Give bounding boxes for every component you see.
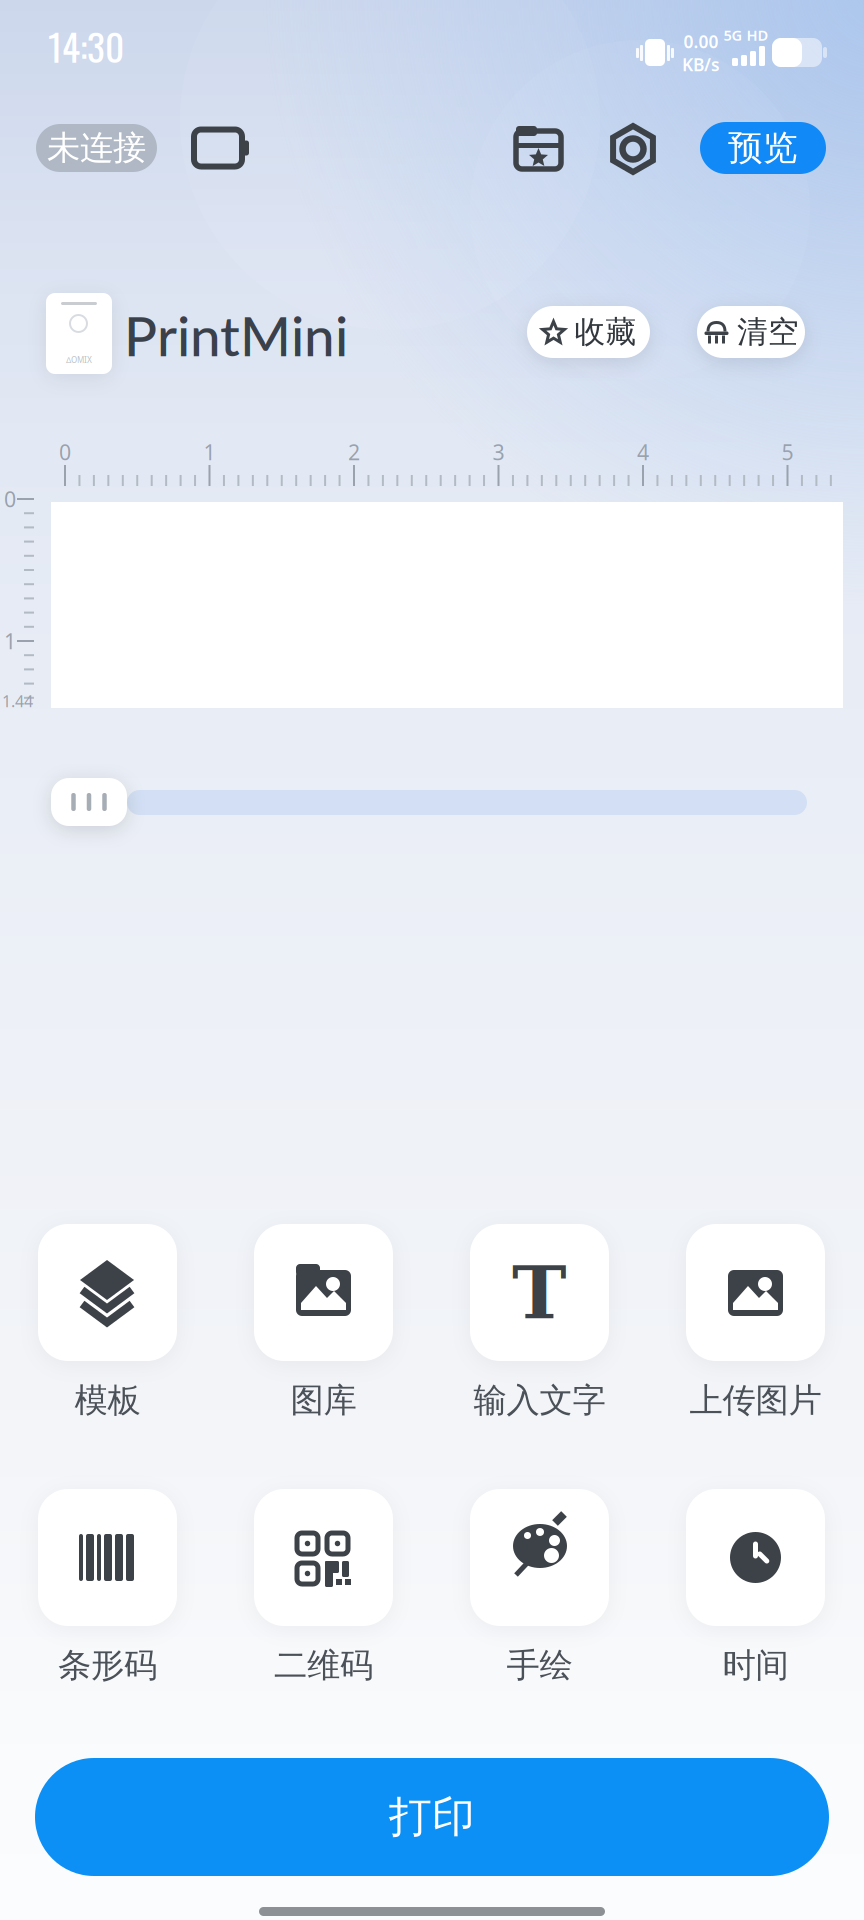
staticText: 条形码 — [58, 1645, 157, 1686]
button[interactable]: 打印 — [35, 1758, 829, 1876]
staticText: ∆OMIX — [66, 355, 92, 365]
button[interactable]: 手绘 — [444, 1489, 634, 1693]
button[interactable]: 上传图片 — [660, 1224, 850, 1428]
staticText: 0 — [4, 485, 16, 513]
button[interactable]: 图库 — [228, 1224, 418, 1428]
button[interactable]: 模板 — [12, 1224, 202, 1428]
staticText: T — [512, 1249, 567, 1336]
staticText: 4 — [637, 438, 649, 466]
button[interactable]: T — [444, 1224, 634, 1428]
staticText: 0.00 — [683, 30, 718, 53]
staticText: PrintMini — [124, 302, 348, 368]
button[interactable]: 时间 — [660, 1489, 850, 1693]
staticText: 清空 — [737, 313, 799, 351]
staticText: 图库 — [290, 1380, 356, 1421]
button[interactable]: 清空 — [697, 306, 805, 358]
button[interactable]: 收藏 — [527, 306, 650, 358]
staticText: 预览 — [728, 127, 798, 169]
button[interactable]: 未连接 — [36, 124, 157, 172]
staticText: 未连接 — [47, 127, 146, 168]
staticText: 时间 — [722, 1645, 788, 1686]
staticText: 打印 — [389, 1791, 475, 1843]
staticText: 0 — [59, 438, 71, 466]
staticText: KB/s — [682, 53, 720, 76]
staticText: 手绘 — [506, 1645, 572, 1686]
button[interactable] — [607, 123, 659, 175]
button[interactable] — [514, 124, 564, 172]
staticText: 上传图片 — [689, 1380, 821, 1421]
staticText: 1 — [4, 627, 16, 655]
staticText: 5 — [781, 438, 793, 466]
staticText: 5G HD — [723, 25, 768, 45]
staticText: 2 — [348, 438, 360, 466]
staticText: 1.44 — [2, 690, 33, 712]
staticText: 3 — [492, 438, 504, 466]
button[interactable] — [193, 126, 249, 170]
button[interactable] — [51, 778, 127, 826]
staticText: 14:30 — [48, 18, 124, 74]
staticText: 收藏 — [574, 313, 636, 351]
staticText: 二维码 — [274, 1645, 373, 1686]
staticText: 输入文字 — [473, 1380, 605, 1421]
button[interactable]: 预览 — [700, 122, 826, 174]
button[interactable]: 条形码 — [12, 1489, 202, 1693]
button[interactable]: 二维码 — [228, 1489, 418, 1693]
staticText: 1 — [203, 438, 215, 466]
staticText: 模板 — [74, 1380, 140, 1421]
